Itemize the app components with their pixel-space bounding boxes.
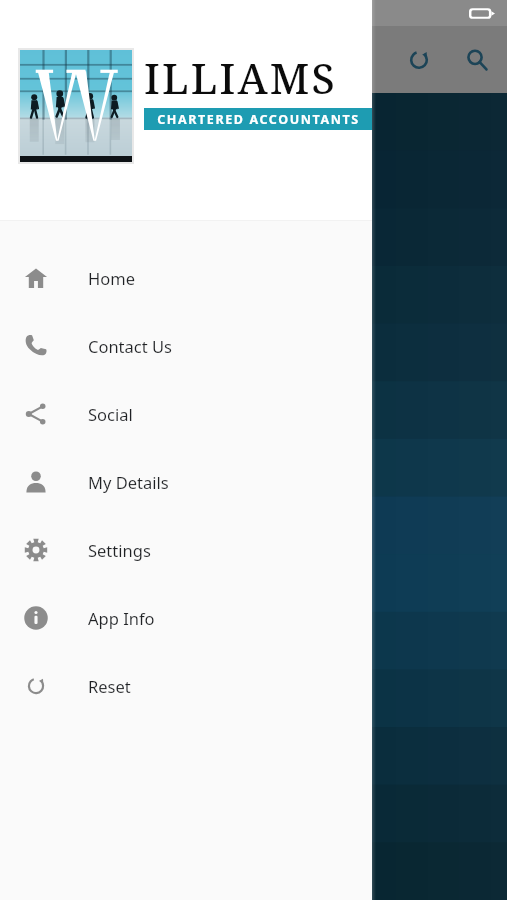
staticText: Settings bbox=[88, 539, 151, 561]
button[interactable]: Home bbox=[0, 244, 372, 312]
staticText: Reset bbox=[88, 675, 131, 697]
staticText: Contact Us bbox=[88, 335, 172, 357]
button[interactable]: Settings bbox=[0, 516, 372, 584]
button[interactable]: App Info bbox=[0, 584, 372, 652]
staticText: ILLIAMS bbox=[144, 49, 338, 106]
button[interactable]: Social bbox=[0, 380, 372, 448]
staticText: Home bbox=[88, 267, 135, 289]
staticText: App Info bbox=[88, 607, 155, 629]
button[interactable]: Reset bbox=[0, 652, 372, 720]
staticText: Social bbox=[88, 403, 133, 425]
button[interactable]: Contact Us bbox=[0, 312, 372, 380]
staticText: CHARTERED ACCOUNTANTS bbox=[157, 111, 360, 128]
button[interactable]: Refresh bbox=[395, 36, 443, 84]
button[interactable]: Search bbox=[453, 36, 501, 84]
button[interactable]: My Details bbox=[0, 448, 372, 516]
staticText: My Details bbox=[88, 471, 169, 493]
